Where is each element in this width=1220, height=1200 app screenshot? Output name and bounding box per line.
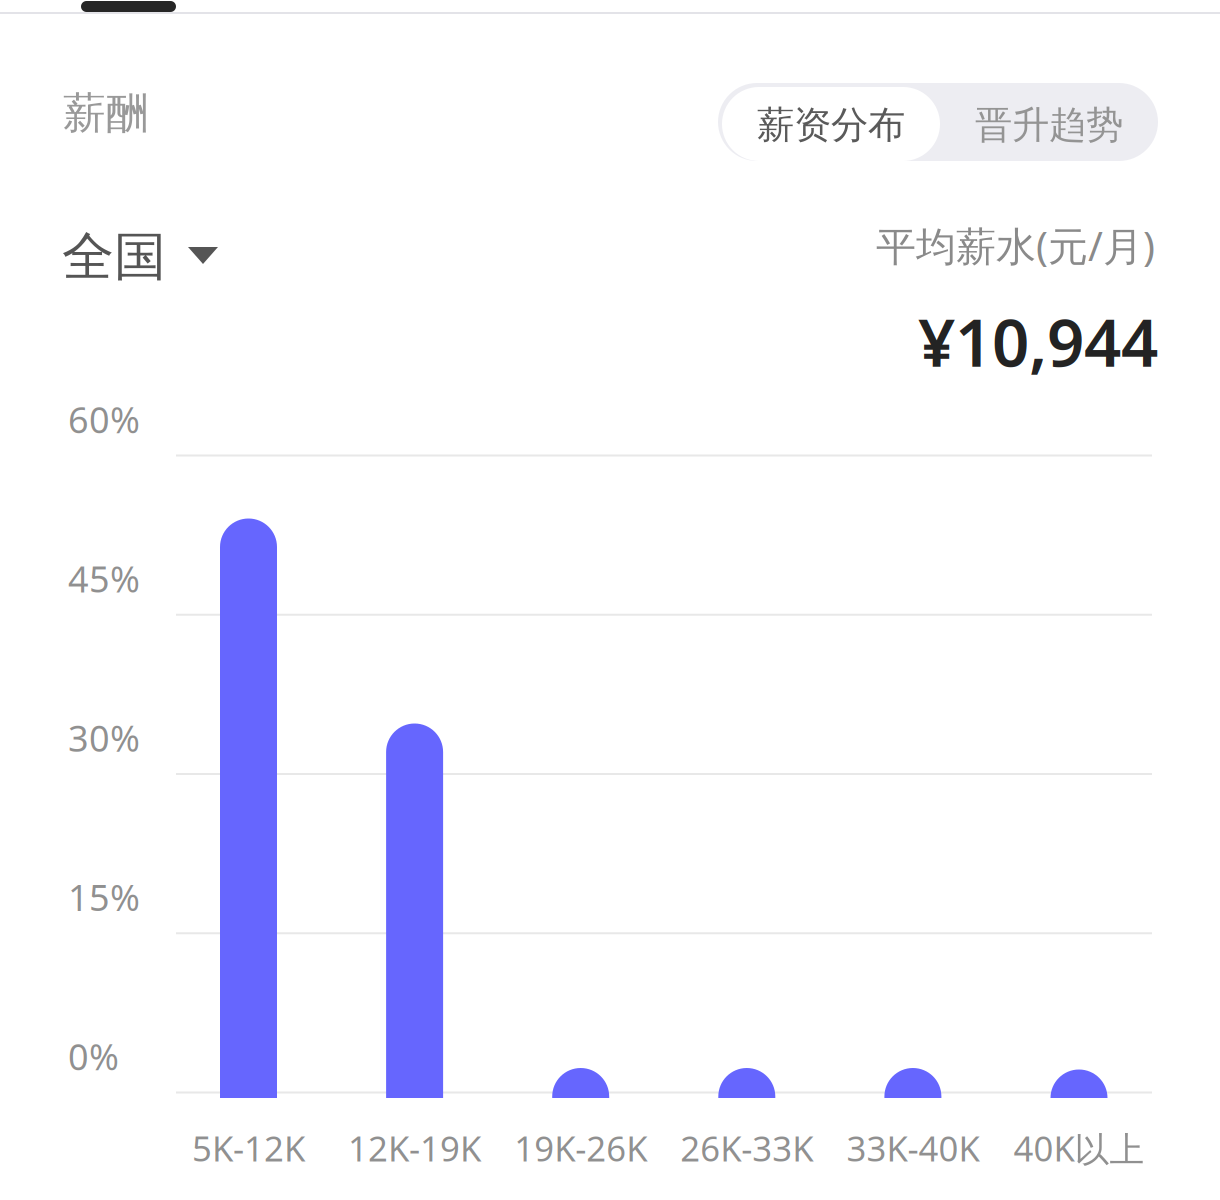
staticText: 45% bbox=[68, 555, 140, 603]
staticText: ¥10,944 bbox=[918, 298, 1158, 385]
staticText: 全国 bbox=[62, 225, 166, 289]
staticText: 15% bbox=[68, 873, 140, 921]
button[interactable]: 薪资分布 bbox=[722, 86, 940, 164]
staticText: 40K以上 bbox=[1013, 1125, 1144, 1171]
staticText: 30% bbox=[68, 714, 140, 762]
staticText: 26K-33K bbox=[680, 1125, 813, 1171]
staticText: 薪资分布 bbox=[757, 102, 905, 148]
staticText: 60% bbox=[68, 395, 140, 443]
staticText: 平均薪水(元/月) bbox=[876, 219, 1155, 272]
button[interactable]: 全国 bbox=[56, 218, 236, 290]
staticText: 33K-40K bbox=[846, 1125, 979, 1171]
button[interactable]: 晋升趋势 bbox=[940, 86, 1158, 164]
staticText: 薪酬 bbox=[63, 87, 149, 139]
staticText: 5K-12K bbox=[192, 1125, 305, 1171]
staticText: 12K-19K bbox=[348, 1125, 481, 1171]
staticText: 晋升趋势 bbox=[975, 102, 1123, 148]
staticText: 0% bbox=[68, 1032, 119, 1080]
staticText: 19K-26K bbox=[514, 1125, 647, 1171]
